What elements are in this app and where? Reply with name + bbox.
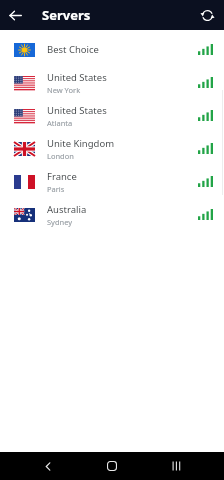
- button[interactable]: Back: [5, 5, 25, 25]
- staticText: France: [47, 170, 77, 183]
- button[interactable]: France: [0, 165, 224, 198]
- staticText: Paris: [47, 184, 65, 194]
- button[interactable]: United States: [0, 99, 224, 132]
- staticText: Sydney: [47, 217, 73, 227]
- button[interactable]: United States: [0, 66, 224, 99]
- staticText: United States: [47, 71, 107, 84]
- button[interactable]: Australia: [0, 198, 224, 231]
- staticText: Best Choice: [47, 43, 99, 56]
- button[interactable]: Refresh: [196, 4, 218, 26]
- staticText: London: [47, 151, 74, 161]
- button[interactable]: Best Choice: [0, 33, 224, 66]
- button[interactable]: Back: [31, 452, 65, 480]
- staticText: New York: [47, 85, 81, 95]
- staticText: Australia: [47, 203, 87, 216]
- staticText: Atlanta: [47, 118, 73, 128]
- staticText: Servers: [42, 6, 91, 24]
- staticText: Unite Kingdom: [47, 137, 115, 150]
- button[interactable]: Recent apps: [160, 452, 194, 480]
- staticText: United States: [47, 104, 107, 117]
- button[interactable]: Unite Kingdom: [0, 132, 224, 165]
- button[interactable]: Home: [95, 452, 129, 480]
